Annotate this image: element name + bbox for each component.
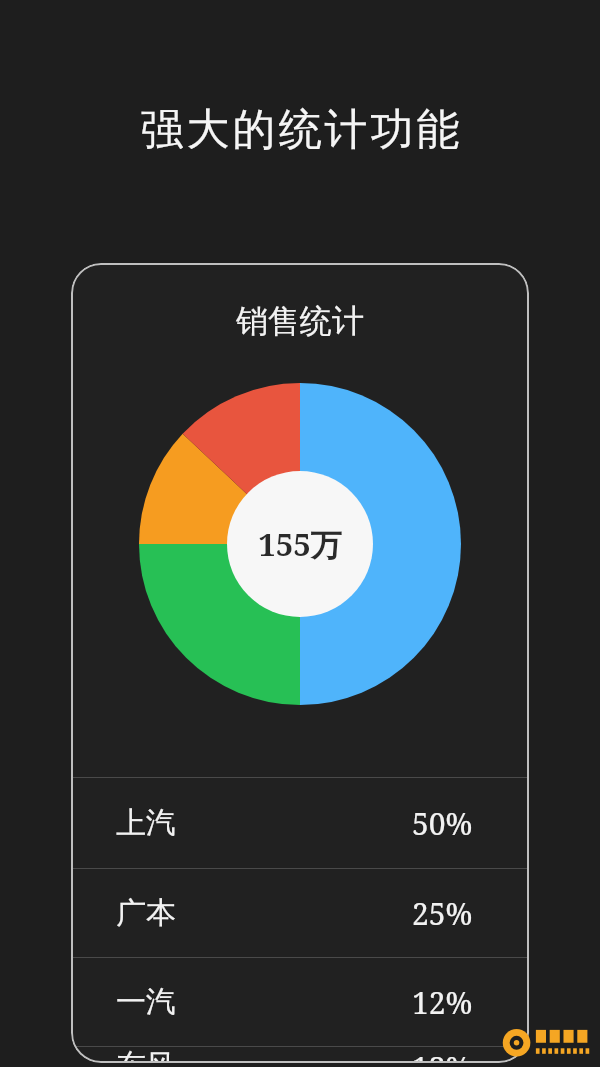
- staticText: 强大的统计功能: [139, 103, 461, 157]
- staticText: 东风: [116, 1047, 176, 1063]
- staticText: 25%: [412, 893, 473, 934]
- staticText: 13%: [412, 1047, 473, 1063]
- staticText: 155万: [258, 523, 342, 565]
- staticText: 12%: [412, 982, 473, 1023]
- staticText: 上汽: [116, 804, 176, 842]
- button[interactable]: 一汽: [71, 958, 529, 1046]
- other: Watermark: [500, 1017, 596, 1063]
- button[interactable]: 销售统计: [71, 263, 529, 1063]
- button[interactable]: 广本: [71, 869, 529, 957]
- button[interactable]: 上汽: [71, 778, 529, 868]
- button[interactable]: 东风: [71, 1047, 529, 1063]
- staticText: 50%: [412, 803, 473, 844]
- staticText: 广本: [116, 894, 176, 932]
- staticText: 一汽: [116, 983, 176, 1021]
- staticText: 销售统计: [236, 301, 364, 341]
